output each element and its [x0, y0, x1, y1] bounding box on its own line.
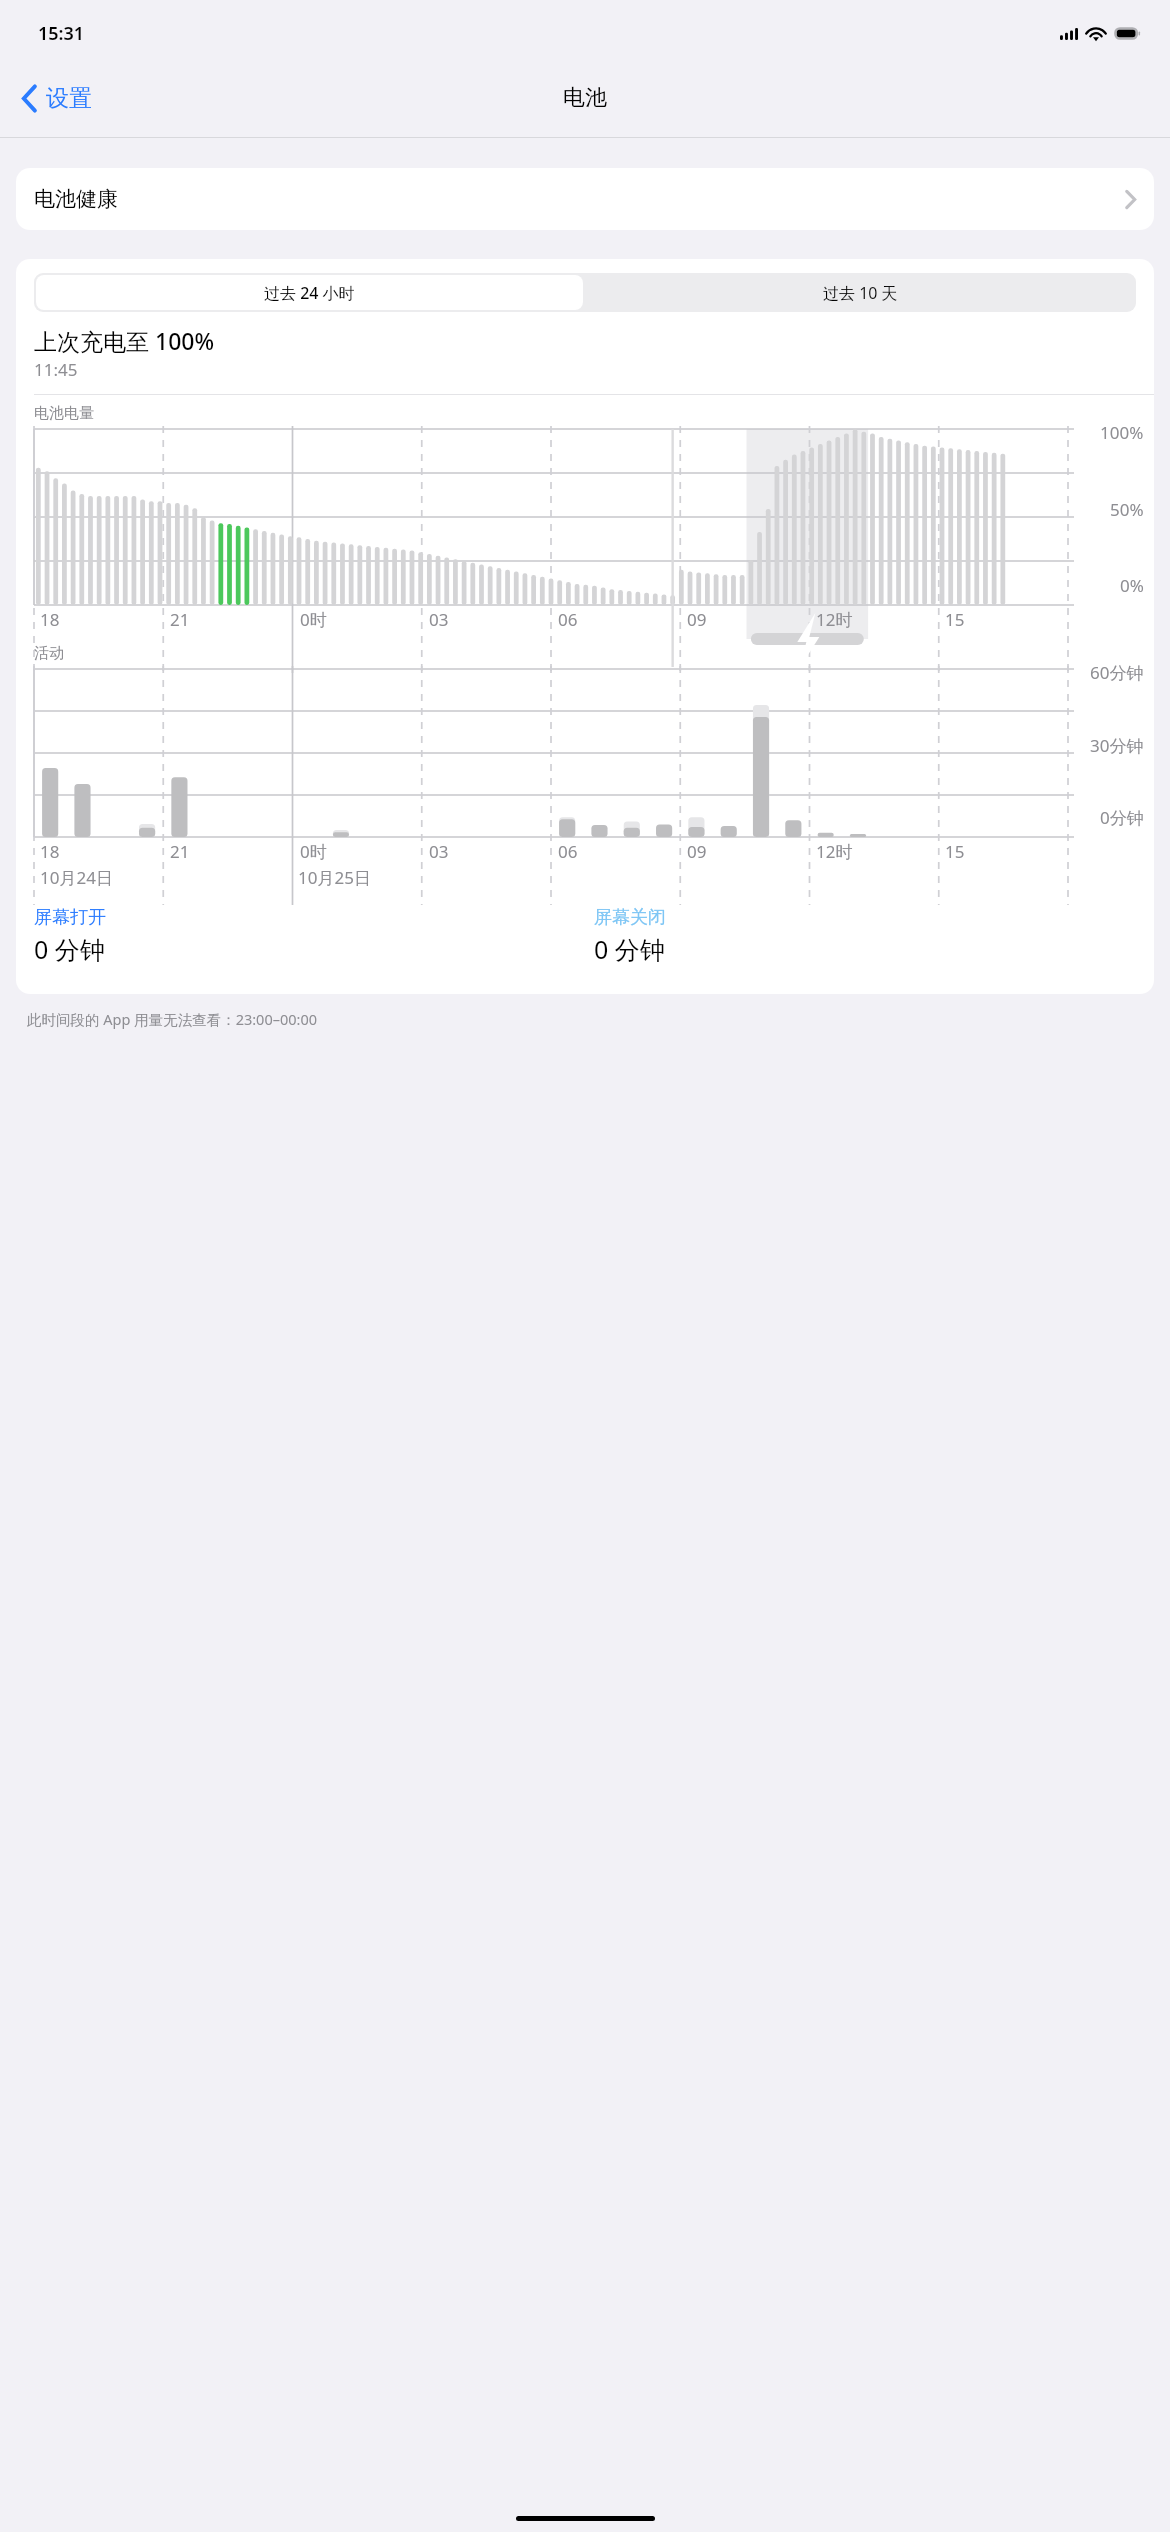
staticText: 0 分钟	[34, 932, 105, 966]
staticText: 10月24日	[40, 866, 113, 889]
staticText: 18	[40, 840, 60, 863]
staticText: 100%	[1100, 421, 1144, 444]
button[interactable]: 过去 10 天	[585, 273, 1136, 312]
staticText: 屏幕打开	[34, 906, 106, 929]
staticText: 50%	[1110, 498, 1144, 521]
staticText: 0%	[1120, 574, 1144, 597]
staticText: 18	[40, 608, 60, 631]
staticText: 电池	[563, 84, 607, 112]
staticText: 电池电量	[34, 404, 94, 423]
staticText: 10月25日	[298, 866, 371, 889]
staticText: 03	[429, 840, 449, 863]
staticText: 屏幕关闭	[594, 906, 666, 929]
staticText: 0 分钟	[594, 932, 665, 966]
staticText: 03	[429, 608, 449, 631]
staticText: 15	[945, 840, 965, 863]
staticText: 60分钟	[1090, 661, 1144, 684]
staticText: 09	[687, 840, 707, 863]
staticText: 设置	[46, 84, 92, 113]
staticText: 12时	[816, 608, 853, 631]
staticText: 30分钟	[1090, 734, 1144, 757]
staticText: 0时	[300, 608, 327, 631]
staticText: 上次充电至 100%	[34, 325, 215, 356]
staticText: 12时	[816, 840, 853, 863]
staticText: 过去 10 天	[823, 282, 898, 304]
staticText: 21	[170, 608, 190, 631]
staticText: 09	[687, 608, 707, 631]
staticText: 过去 24 小时	[264, 282, 355, 304]
staticText: 06	[558, 840, 578, 863]
button[interactable]: 过去 24 小时	[36, 275, 583, 310]
staticText: 0分钟	[1100, 806, 1144, 829]
button[interactable]: 电池健康	[16, 168, 1154, 230]
staticText: 活动	[34, 644, 64, 663]
staticText: 电池健康	[34, 186, 118, 212]
staticText: 11:45	[34, 358, 78, 381]
staticText: 0时	[300, 840, 327, 863]
staticText: 21	[170, 840, 190, 863]
staticText: 15	[945, 608, 965, 631]
button[interactable]: 设置	[14, 78, 100, 119]
other: Battery Health	[1125, 190, 1136, 209]
staticText: 15:31	[38, 21, 85, 46]
staticText: 此时间段的 App 用量无法查看：23:00–00:00	[27, 1009, 318, 1029]
staticText: 06	[558, 608, 578, 631]
